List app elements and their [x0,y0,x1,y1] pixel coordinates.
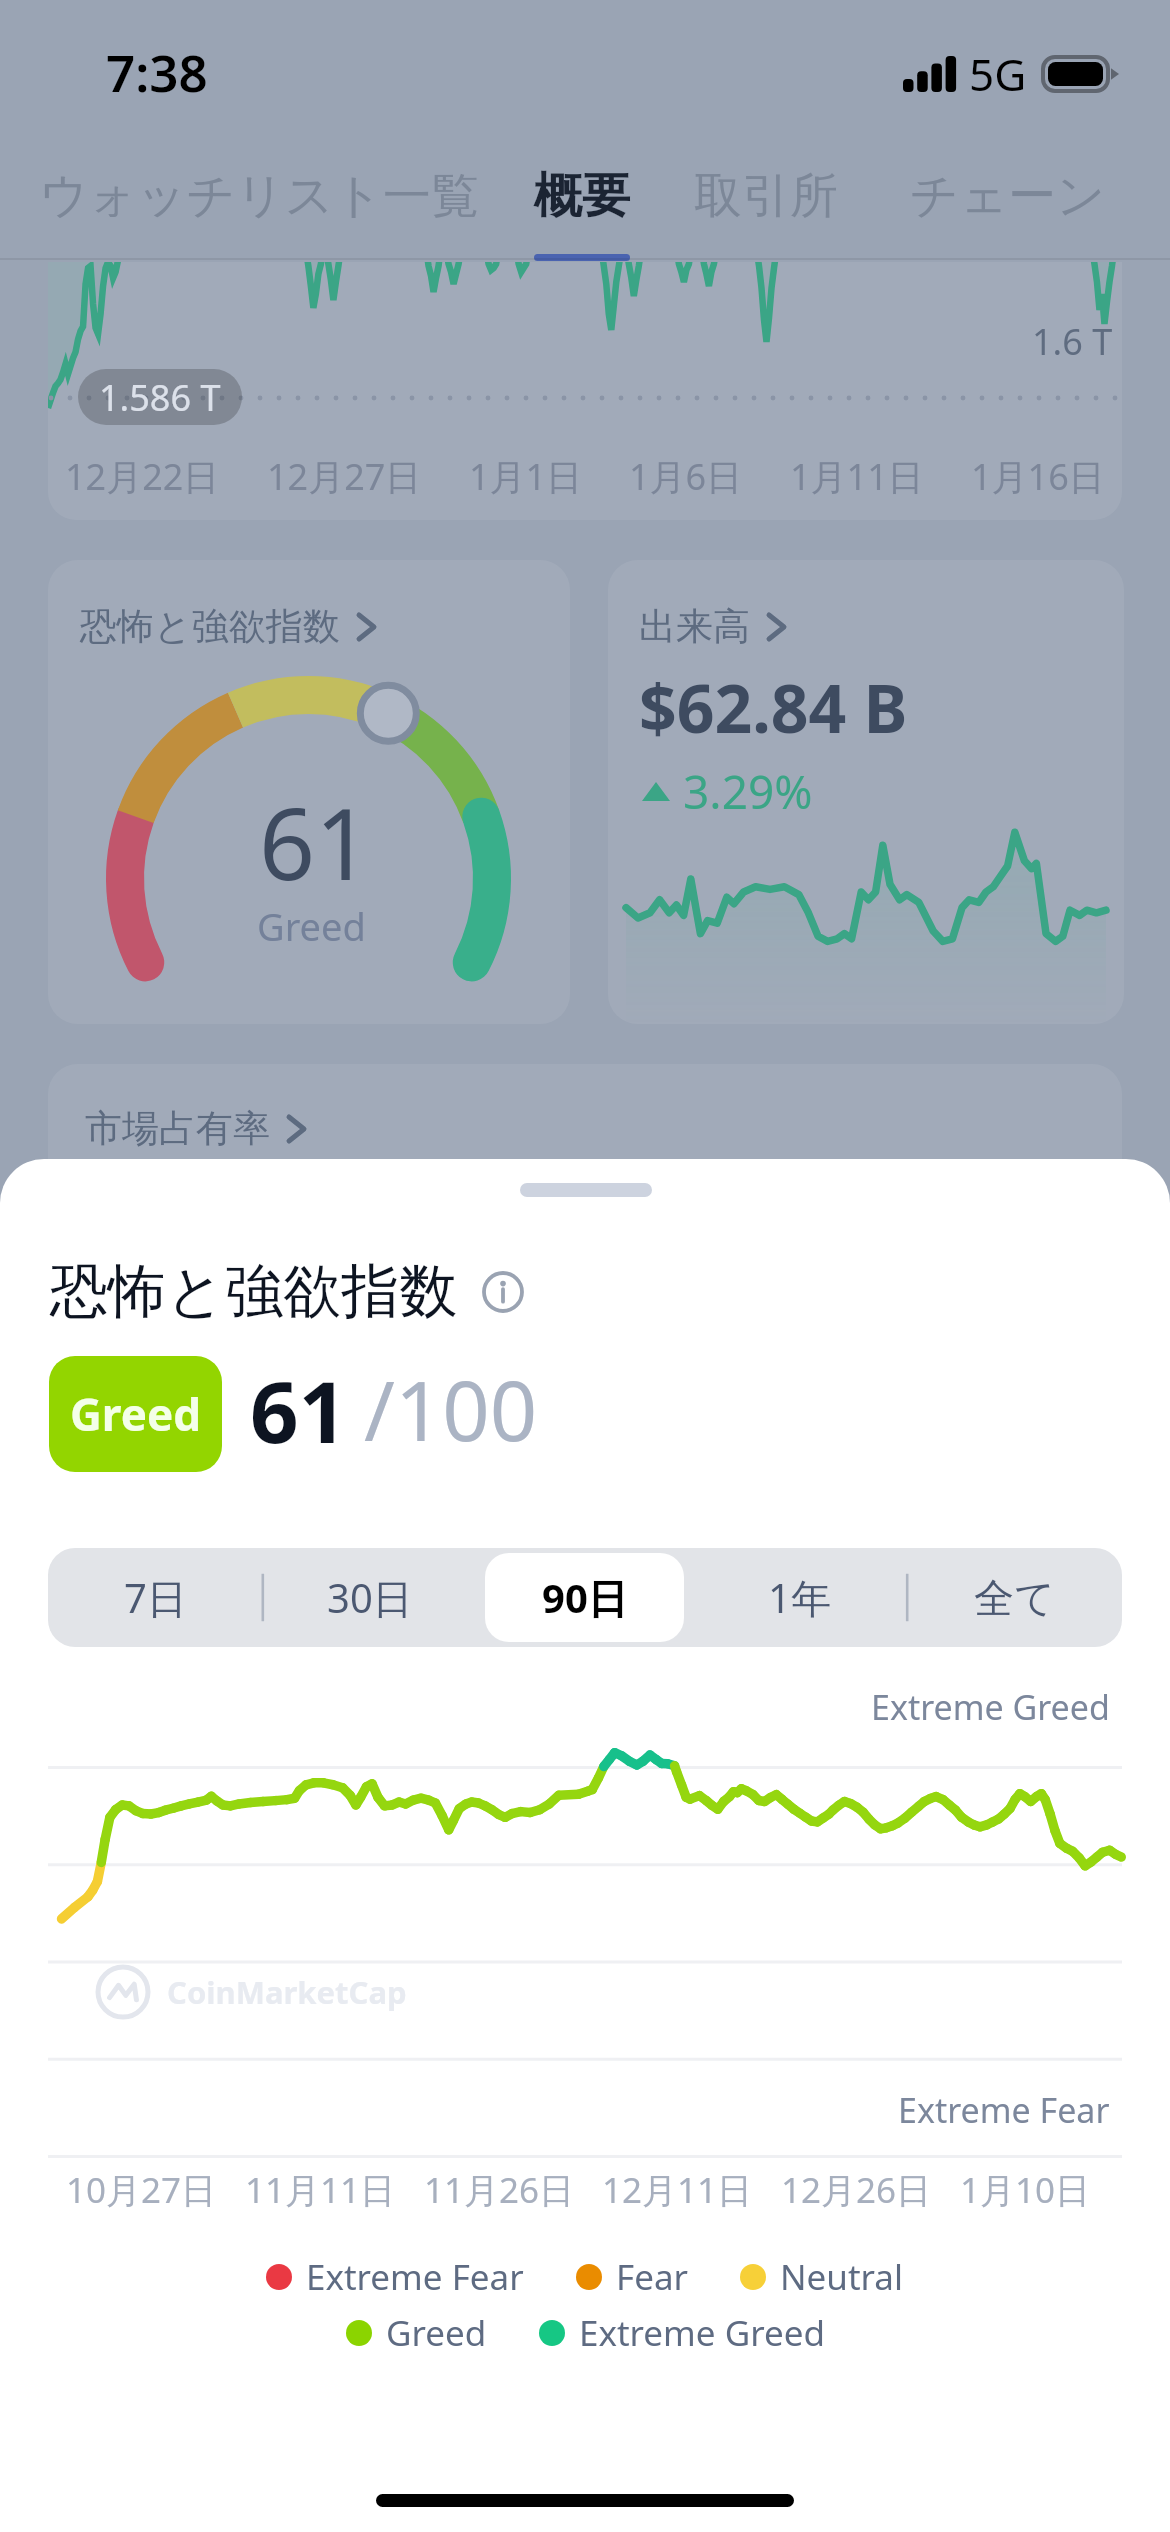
other: Battery [1041,55,1119,93]
staticText: 7:38 [106,37,208,106]
staticText: チェーン [910,166,1106,226]
staticText: Extreme Greed [871,1684,1110,1730]
staticText: 1月16日 [971,452,1105,501]
staticText: 61 [259,775,372,908]
staticText: Greed [386,2309,487,2357]
staticText: Greed [70,1384,201,1444]
button[interactable]: 出来高 [608,560,1124,1024]
staticText: 概要 [534,166,630,226]
button[interactable]: Fear [576,2253,688,2301]
staticText: 1月11日 [790,452,924,501]
staticText: 12月22日 [65,452,220,501]
button[interactable]: 1年 [692,1548,907,1647]
button[interactable]: 90日 [477,1548,692,1647]
button[interactable]: Extreme Fear [266,2253,524,2301]
staticText: Extreme Fear [306,2253,524,2301]
staticText: Neutral [780,2253,904,2301]
staticText: CoinMarketCap [167,1971,407,2013]
button[interactable]: Greed [346,2309,487,2357]
staticText: 1.6 T [1032,317,1113,366]
staticText: 市場占有率 [85,1105,270,1152]
button[interactable]: Drag handle [450,1165,722,1215]
staticText: 12月27日 [267,452,422,501]
staticText: $62.84 B [639,662,908,752]
staticText: 90日 [542,1570,628,1625]
button[interactable]: 市場占有率 [48,1064,1122,1264]
button[interactable]: Extreme Greed [539,2309,825,2357]
staticText: 12月26日 [781,2166,932,2214]
other: Cellular signal [903,56,955,92]
button[interactable]: 取引所 [694,166,838,254]
staticText: Greed [257,900,366,952]
staticText: 全て [974,1573,1055,1623]
staticText: Extreme Fear [898,2087,1110,2133]
button[interactable]: ウォッチリスト一覧 [39,166,479,254]
staticText: 恐怖と強欲指数 [80,603,340,650]
button[interactable]: 恐怖と強欲指数 [48,560,570,1024]
button[interactable]: Information [482,1271,524,1313]
button[interactable]: チェーン [910,166,1106,254]
staticText: Fear [616,2253,688,2301]
staticText: 11月11日 [245,2166,396,2214]
staticText: 出来高 [639,603,750,650]
staticText: 1.586 T [99,373,221,422]
staticText: 12月11日 [602,2166,753,2214]
button[interactable]: 7日 [48,1548,262,1647]
button[interactable]: Greed [49,1356,222,1472]
staticText: 10月27日 [66,2166,217,2214]
staticText: 1月10日 [960,2166,1091,2214]
staticText: Extreme Greed [579,2309,825,2357]
staticText: 30日 [327,1570,413,1625]
staticText: ウォッチリスト一覧 [39,166,479,226]
staticText: 1月6日 [629,452,743,501]
staticText: 11月26日 [424,2166,575,2214]
button[interactable]: 概要 [534,166,630,261]
staticText: 1月1日 [469,452,583,501]
staticText: 61 [250,1352,348,1468]
staticText: 5G [969,44,1027,104]
button[interactable]: 30日 [262,1548,477,1647]
staticText: /100 [364,1352,538,1465]
staticText: 1年 [768,1570,831,1625]
staticText: 取引所 [694,166,838,226]
staticText: 3.29% [683,760,813,823]
button[interactable]: Neutral [740,2253,904,2301]
staticText: 恐怖と強欲指数 [50,1255,458,1328]
button[interactable]: 1.6 T [48,262,1122,520]
staticText: 7日 [124,1570,187,1625]
button[interactable]: 全て [907,1548,1122,1647]
